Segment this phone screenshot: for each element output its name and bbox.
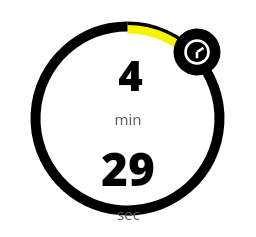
staticText: 29	[101, 137, 155, 200]
staticText: sec	[117, 204, 140, 224]
staticText: 4	[118, 46, 143, 103]
staticText: min	[114, 109, 142, 129]
button[interactable]: Timer dial	[0, 0, 256, 237]
